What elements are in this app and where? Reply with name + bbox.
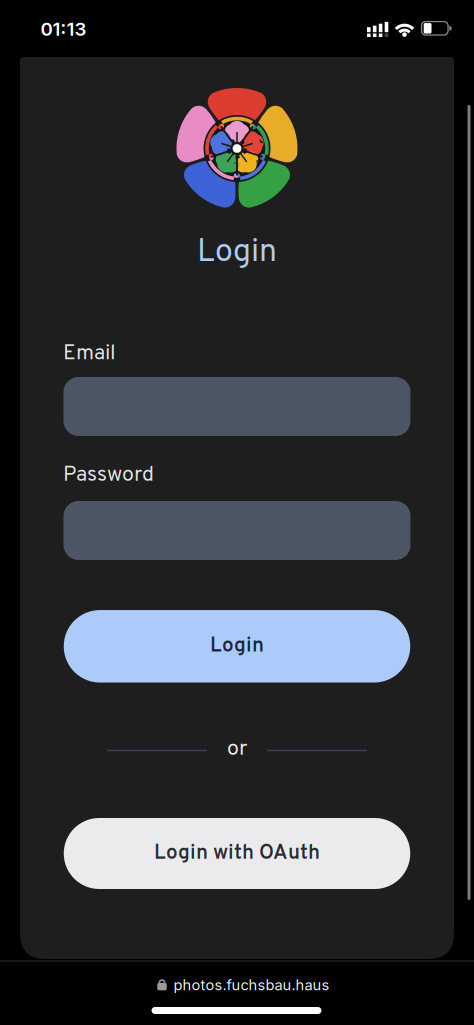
staticText: or	[227, 736, 247, 763]
staticText: Email	[63, 340, 116, 367]
staticText: Login	[197, 233, 277, 273]
staticText: Password	[63, 462, 154, 489]
button[interactable]	[63, 377, 410, 436]
staticText: 01:13	[40, 18, 86, 40]
button[interactable]: photos.fuchsbau.haus	[156, 976, 329, 994]
button[interactable]	[63, 501, 410, 560]
staticText: Login with OAuth	[154, 840, 320, 867]
staticText: photos.fuchsbau.haus	[173, 976, 329, 994]
button[interactable]: Login	[64, 610, 410, 682]
staticText: Login	[210, 633, 264, 659]
button[interactable]: Login with OAuth	[64, 818, 410, 889]
